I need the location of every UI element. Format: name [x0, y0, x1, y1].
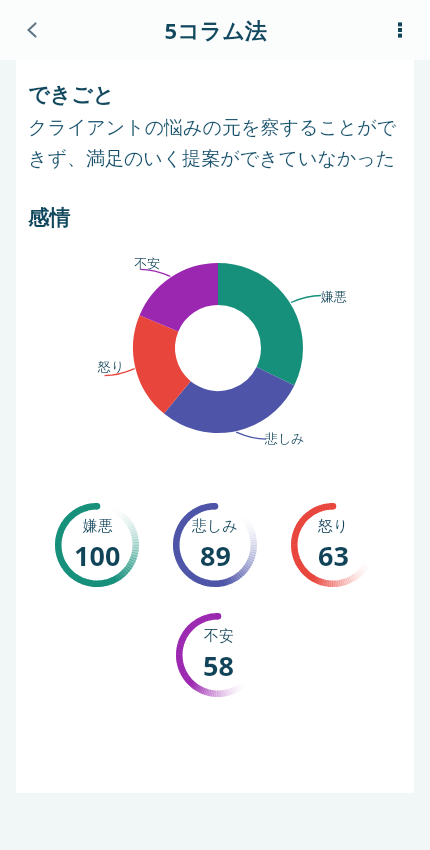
button[interactable]: 嫌悪 [47, 495, 147, 595]
button[interactable]: 怒り [283, 495, 383, 595]
staticText: 感情 [28, 205, 70, 231]
staticText: クライアントの悩みの元を察することができず、満足のいく提案ができていなかった [28, 116, 402, 171]
staticText: 悲しみ [192, 517, 238, 536]
staticText: 悲しみ [265, 430, 305, 446]
button[interactable]: Back [8, 6, 56, 54]
staticText: 嫌悪 [321, 288, 347, 304]
staticText: 怒り [318, 517, 349, 536]
staticText: 不安 [134, 255, 160, 271]
button[interactable]: 不安 [168, 605, 268, 705]
staticText: 不安 [204, 627, 234, 646]
staticText: 怒り [98, 358, 125, 374]
staticText: 100 [74, 537, 121, 574]
button[interactable]: More options [376, 6, 424, 54]
staticText: 58 [203, 647, 234, 684]
staticText: 嫌悪 [83, 517, 113, 536]
button[interactable]: 悲しみ [165, 495, 265, 595]
staticText: できごと [28, 82, 114, 108]
staticText: 89 [200, 537, 231, 574]
staticText: 5コラム法 [164, 15, 267, 45]
staticText: 63 [318, 537, 349, 574]
